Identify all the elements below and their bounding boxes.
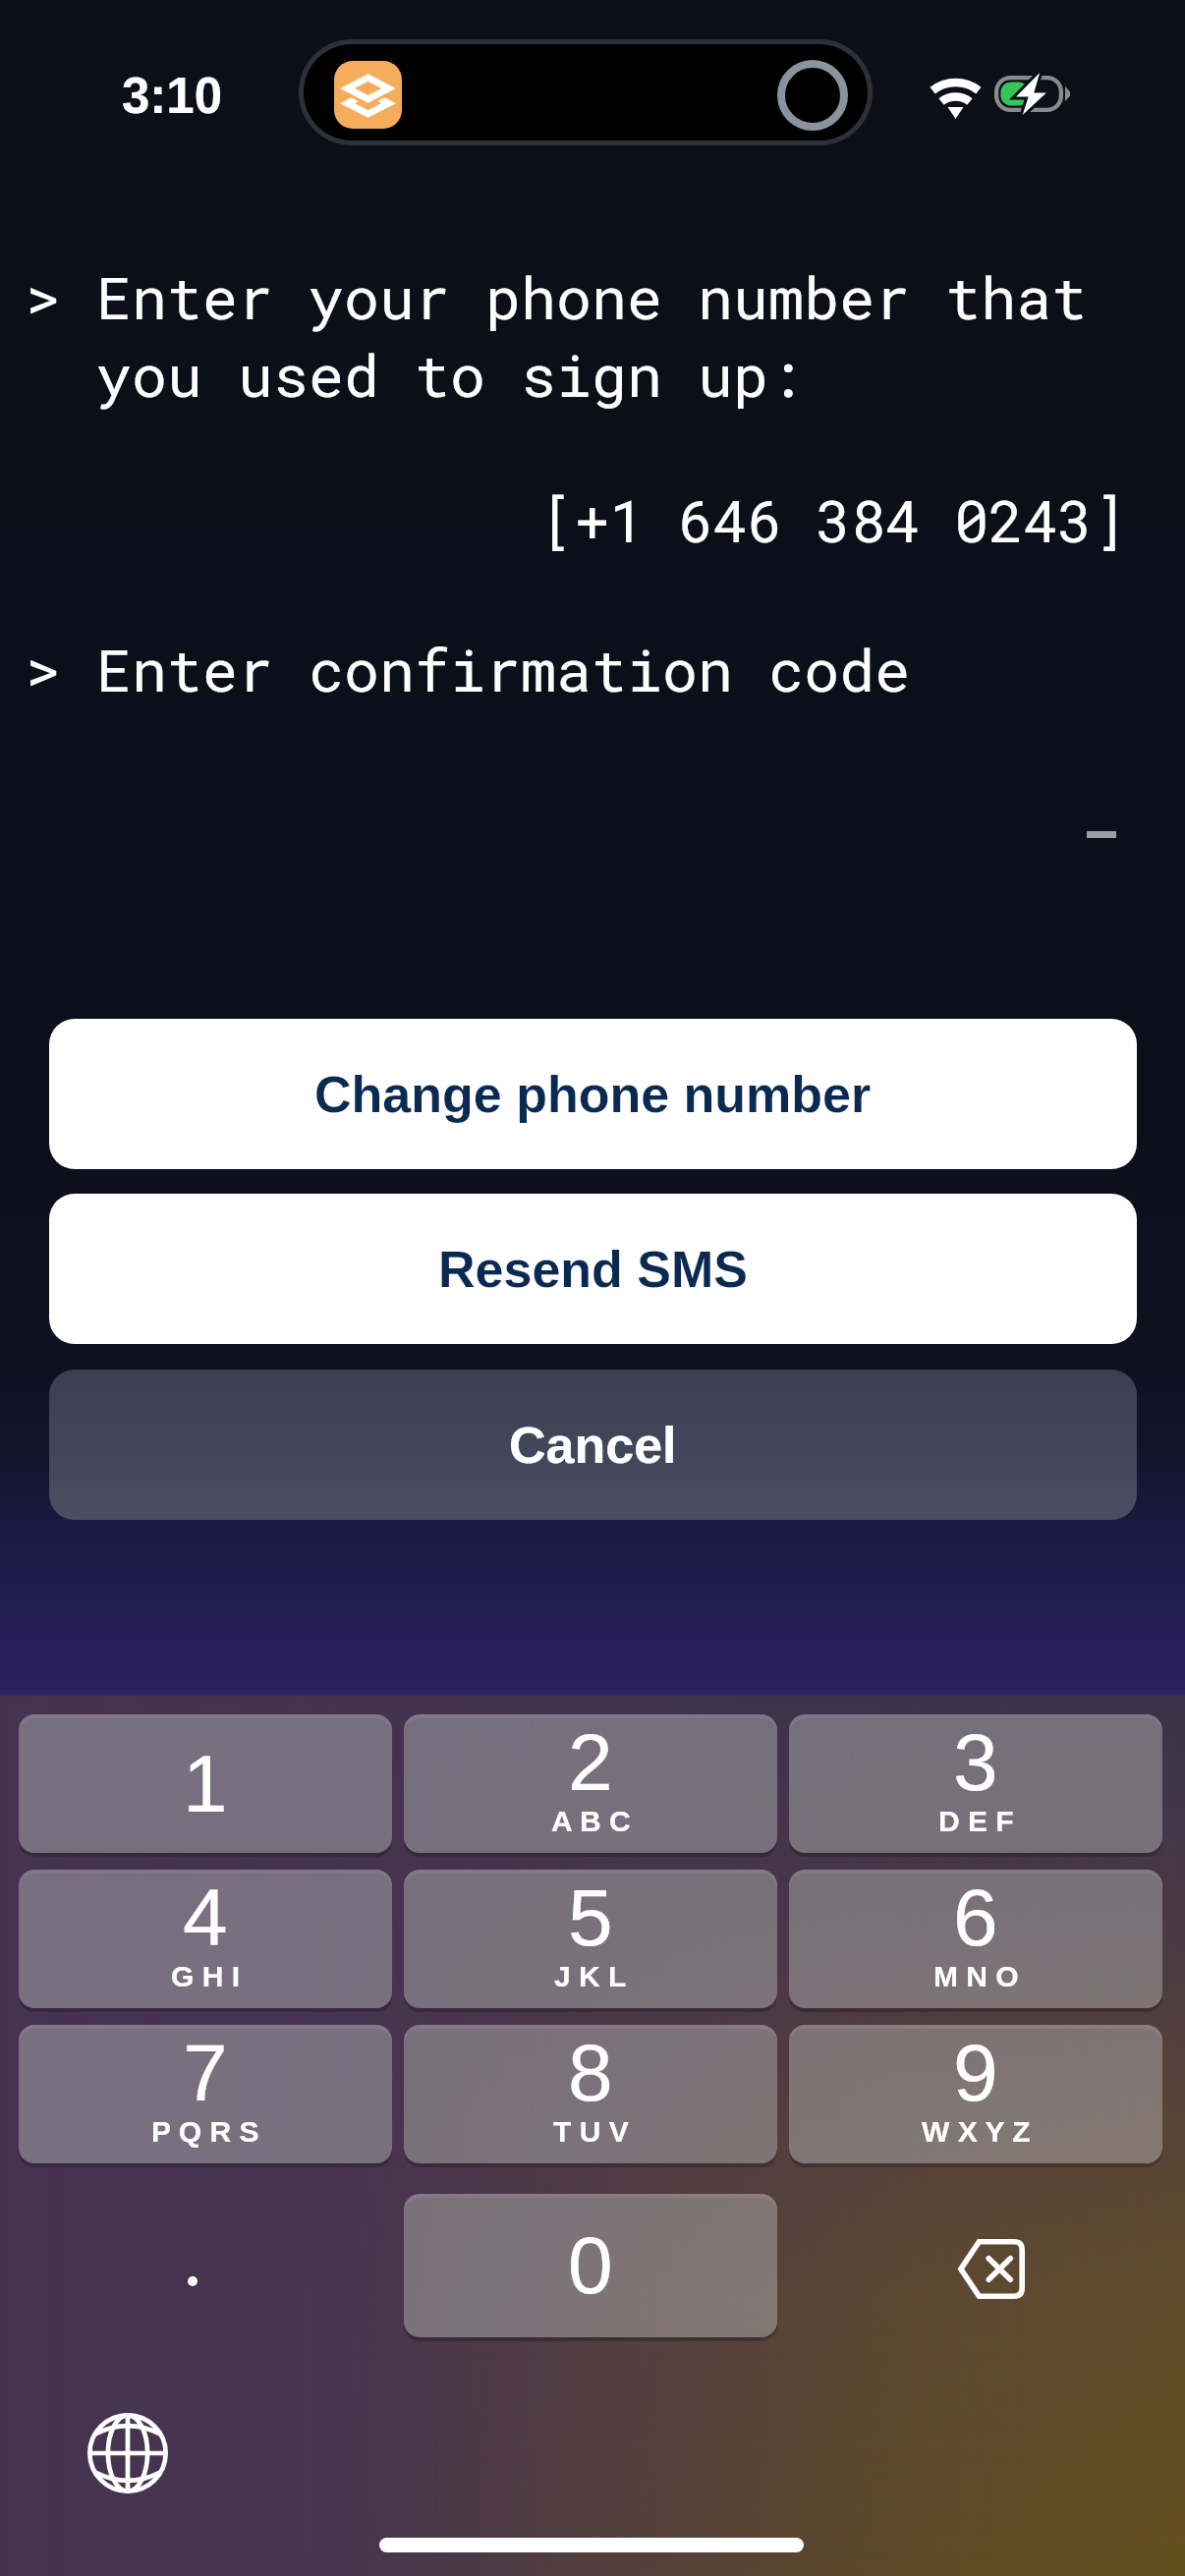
staticText: 5 xyxy=(568,1873,613,1957)
button[interactable]: Change phone number xyxy=(49,1019,1137,1169)
staticText: 9 xyxy=(953,2028,998,2112)
staticText: P Q R S xyxy=(151,2115,259,2149)
staticText: 3:10 xyxy=(122,68,223,124)
staticText: > Enter confirmation code xyxy=(26,630,911,707)
staticText: 7 xyxy=(183,2028,228,2112)
button[interactable]: Cancel xyxy=(49,1370,1137,1520)
button[interactable]: 4 xyxy=(19,1870,392,2008)
staticText: Cancel xyxy=(509,1417,677,1474)
button[interactable]: 6 xyxy=(789,1870,1162,2008)
button[interactable]: 3 xyxy=(789,1714,1162,1853)
staticText: > Enter your phone number that you used … xyxy=(26,257,1088,413)
button[interactable]: Resend SMS xyxy=(49,1194,1137,1344)
staticText: 0 xyxy=(568,2220,613,2311)
button[interactable]: 9 xyxy=(789,2025,1162,2163)
staticText: Resend SMS xyxy=(438,1241,748,1298)
staticText: J K L xyxy=(554,1960,627,1993)
button[interactable]: 1 xyxy=(19,1714,392,1853)
button[interactable]: 7 xyxy=(19,2025,392,2163)
staticText: 8 xyxy=(568,2028,613,2112)
staticText: 2 xyxy=(568,1717,613,1802)
button[interactable]: Change keyboard language xyxy=(86,2412,169,2494)
staticText: D E F xyxy=(938,1805,1014,1838)
staticText: 1 xyxy=(183,1739,228,1829)
button[interactable]: Backspace xyxy=(914,2209,1067,2328)
staticText: W X Y Z xyxy=(922,2115,1031,2149)
button[interactable]: 0 xyxy=(404,2194,777,2337)
staticText: 4 xyxy=(183,1873,228,1957)
staticText: G H I xyxy=(171,1960,241,1993)
staticText: Change phone number xyxy=(314,1066,872,1123)
staticText: [+1 646 384 0243] xyxy=(540,482,1127,558)
staticText: M N O xyxy=(933,1960,1019,1993)
button[interactable]: 5 xyxy=(404,1870,777,2008)
staticText: 6 xyxy=(953,1873,998,1957)
button[interactable]: 8 xyxy=(404,2025,777,2163)
staticText: A B C xyxy=(551,1805,631,1838)
staticText: 3 xyxy=(953,1717,998,1802)
staticText: T U V xyxy=(553,2115,629,2149)
button[interactable]: 2 xyxy=(404,1714,777,1853)
